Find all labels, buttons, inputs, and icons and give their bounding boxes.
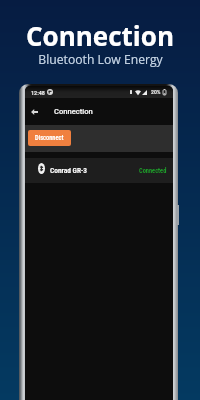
staticText: Disconnect (35, 134, 64, 142)
staticText: 12:48 (31, 89, 45, 96)
button[interactable]: Back (28, 105, 41, 118)
staticText: 20% (151, 89, 161, 96)
staticText: Connection (54, 107, 93, 116)
staticText: Connection (26, 18, 174, 53)
button[interactable]: Disconnect (28, 130, 71, 146)
staticText: Bluetooth Low Energy (38, 51, 163, 68)
button[interactable]: Conrad GR-3 (25, 158, 173, 183)
staticText: Connected (139, 167, 167, 175)
staticText: Conrad GR-3 (50, 166, 87, 175)
